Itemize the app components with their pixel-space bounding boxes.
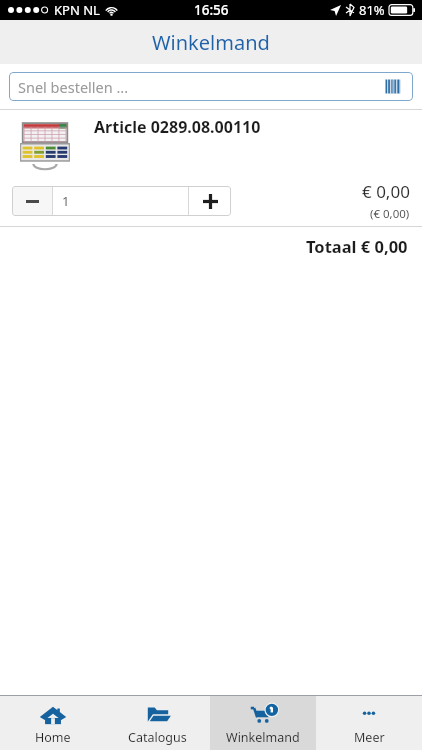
staticText: 81% [359, 1, 385, 19]
staticText: Totaal € 0,00 [306, 235, 408, 257]
staticText: Snel bestellen ... [18, 77, 129, 97]
staticText: Home [35, 729, 71, 746]
button[interactable]: Article 0289.08.00110 [0, 110, 422, 175]
staticText: Catalogus [128, 729, 187, 746]
staticText: Winkelmand [226, 729, 300, 746]
staticText: Winkelmand [152, 29, 270, 56]
button[interactable]: Home [0, 696, 105, 750]
staticText: Meer [354, 729, 385, 746]
button[interactable]: Meer [316, 696, 422, 750]
staticText: 16:56 [194, 1, 229, 19]
button[interactable]: Decrease quantity [12, 186, 52, 216]
staticText: Article 0289.08.00110 [94, 116, 261, 138]
button[interactable]: 1 [53, 186, 188, 216]
staticText: € 0,00 [362, 180, 410, 203]
staticText: KPN NL [54, 1, 100, 19]
staticText: 1 [62, 192, 70, 210]
button[interactable]: Winkelmand [210, 696, 316, 750]
button[interactable]: Increase quantity [189, 186, 231, 216]
button[interactable]: Scan barcode [384, 78, 404, 95]
button[interactable]: Snel bestellen ... [9, 72, 413, 101]
button[interactable]: Catalogus [105, 696, 210, 750]
staticText: (€ 0,00) [370, 206, 410, 222]
